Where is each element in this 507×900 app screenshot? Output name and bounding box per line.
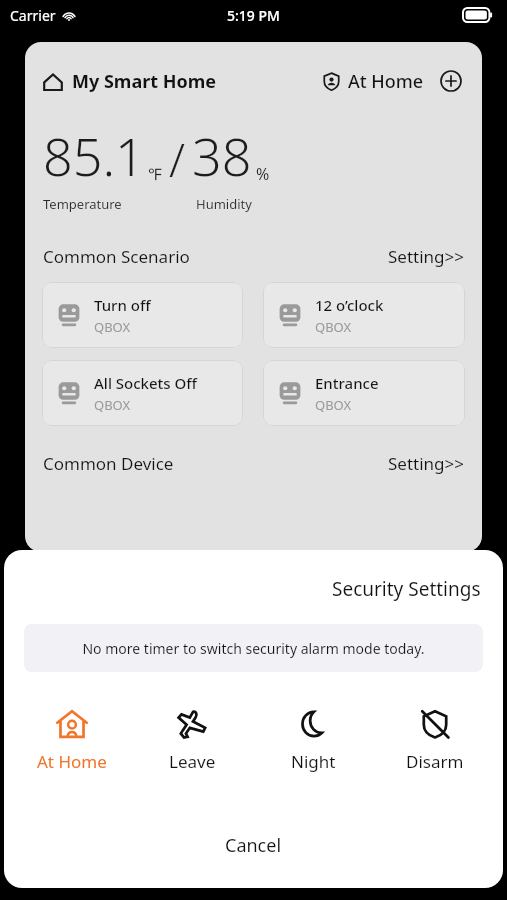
staticText: My Smart Home: [72, 69, 217, 94]
button[interactable]: All Sockets Off: [42, 360, 243, 426]
staticText: Setting>>: [388, 245, 464, 268]
staticText: Turn off: [94, 295, 151, 315]
staticText: QBOX: [315, 318, 352, 336]
button[interactable]: Setting>>: [388, 452, 464, 475]
staticText: All Sockets Off: [94, 373, 197, 393]
staticText: ℉: [148, 163, 162, 185]
staticText: Common Scenario: [43, 245, 190, 268]
staticText: Leave: [169, 750, 216, 773]
staticText: QBOX: [315, 396, 352, 414]
button[interactable]: Leave: [132, 704, 253, 777]
staticText: Entrance: [315, 373, 379, 393]
staticText: Humidity: [196, 195, 252, 213]
staticText: Security Settings: [332, 576, 481, 602]
staticText: 85.1: [43, 120, 145, 191]
staticText: Temperature: [43, 195, 122, 213]
staticText: 38: [192, 120, 252, 191]
staticText: /: [169, 128, 185, 191]
button[interactable]: Cancel: [4, 816, 503, 888]
staticText: Common Device: [43, 452, 174, 475]
staticText: QBOX: [94, 318, 131, 336]
staticText: QBOX: [94, 396, 131, 414]
button[interactable]: At Home: [12, 704, 132, 777]
button[interactable]: Turn off: [42, 282, 243, 348]
staticText: 12 o’clock: [315, 295, 384, 315]
button[interactable]: My Smart Home: [43, 69, 217, 94]
button[interactable]: 12 o’clock: [263, 282, 465, 348]
staticText: At Home: [37, 750, 107, 773]
staticText: Night: [291, 750, 336, 773]
button[interactable]: Entrance: [263, 360, 465, 426]
staticText: Carrier: [10, 6, 56, 25]
button[interactable]: Disarm: [374, 704, 495, 777]
staticText: Setting>>: [388, 452, 464, 475]
staticText: 5:19 PM: [227, 6, 280, 25]
staticText: Cancel: [225, 833, 282, 858]
button[interactable]: Setting>>: [388, 245, 464, 268]
button[interactable]: At Home: [322, 69, 424, 94]
button[interactable]: Night: [253, 704, 374, 777]
staticText: %: [256, 163, 270, 185]
button[interactable]: Add device: [438, 68, 464, 94]
staticText: No more timer to switch security alarm m…: [82, 639, 425, 658]
staticText: At Home: [348, 69, 424, 94]
staticText: Disarm: [406, 750, 464, 773]
